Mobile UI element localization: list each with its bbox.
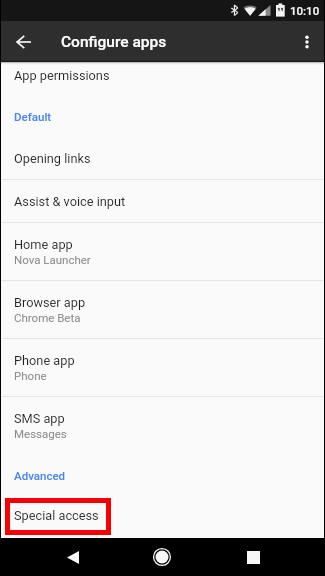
button[interactable]: Browser app: [0, 281, 325, 338]
button[interactable]: App permissions: [0, 62, 325, 95]
staticText: Phone: [14, 369, 47, 382]
staticText: Opening links: [14, 151, 91, 166]
staticText: Configure apps: [61, 33, 167, 51]
staticText: Messages: [14, 427, 67, 440]
staticText: Assist & voice input: [14, 194, 126, 209]
button[interactable]: Home: [142, 538, 182, 576]
staticText: Advanced: [14, 469, 66, 482]
button[interactable]: More options: [294, 29, 320, 55]
button[interactable]: Assist & voice input: [0, 180, 325, 222]
button[interactable]: Home app: [0, 223, 325, 280]
button[interactable]: Special access: [0, 496, 325, 538]
button[interactable]: Phone app: [0, 339, 325, 396]
staticText: SMS app: [14, 411, 65, 426]
button[interactable]: SMS app: [0, 397, 325, 454]
staticText: Default: [14, 110, 52, 123]
staticText: Browser app: [14, 295, 86, 310]
staticText: Chrome Beta: [14, 311, 81, 324]
staticText: 10:10: [290, 4, 320, 17]
button[interactable]: Recent apps: [233, 538, 273, 576]
staticText: Special access: [14, 508, 99, 523]
button[interactable]: Back: [53, 538, 93, 576]
staticText: Nova Launcher: [14, 253, 91, 266]
staticText: Home app: [14, 237, 73, 252]
button[interactable]: Opening links: [0, 137, 325, 179]
staticText: Phone app: [14, 353, 75, 368]
staticText: App permissions: [14, 68, 110, 83]
button[interactable]: Navigate up: [10, 29, 36, 55]
